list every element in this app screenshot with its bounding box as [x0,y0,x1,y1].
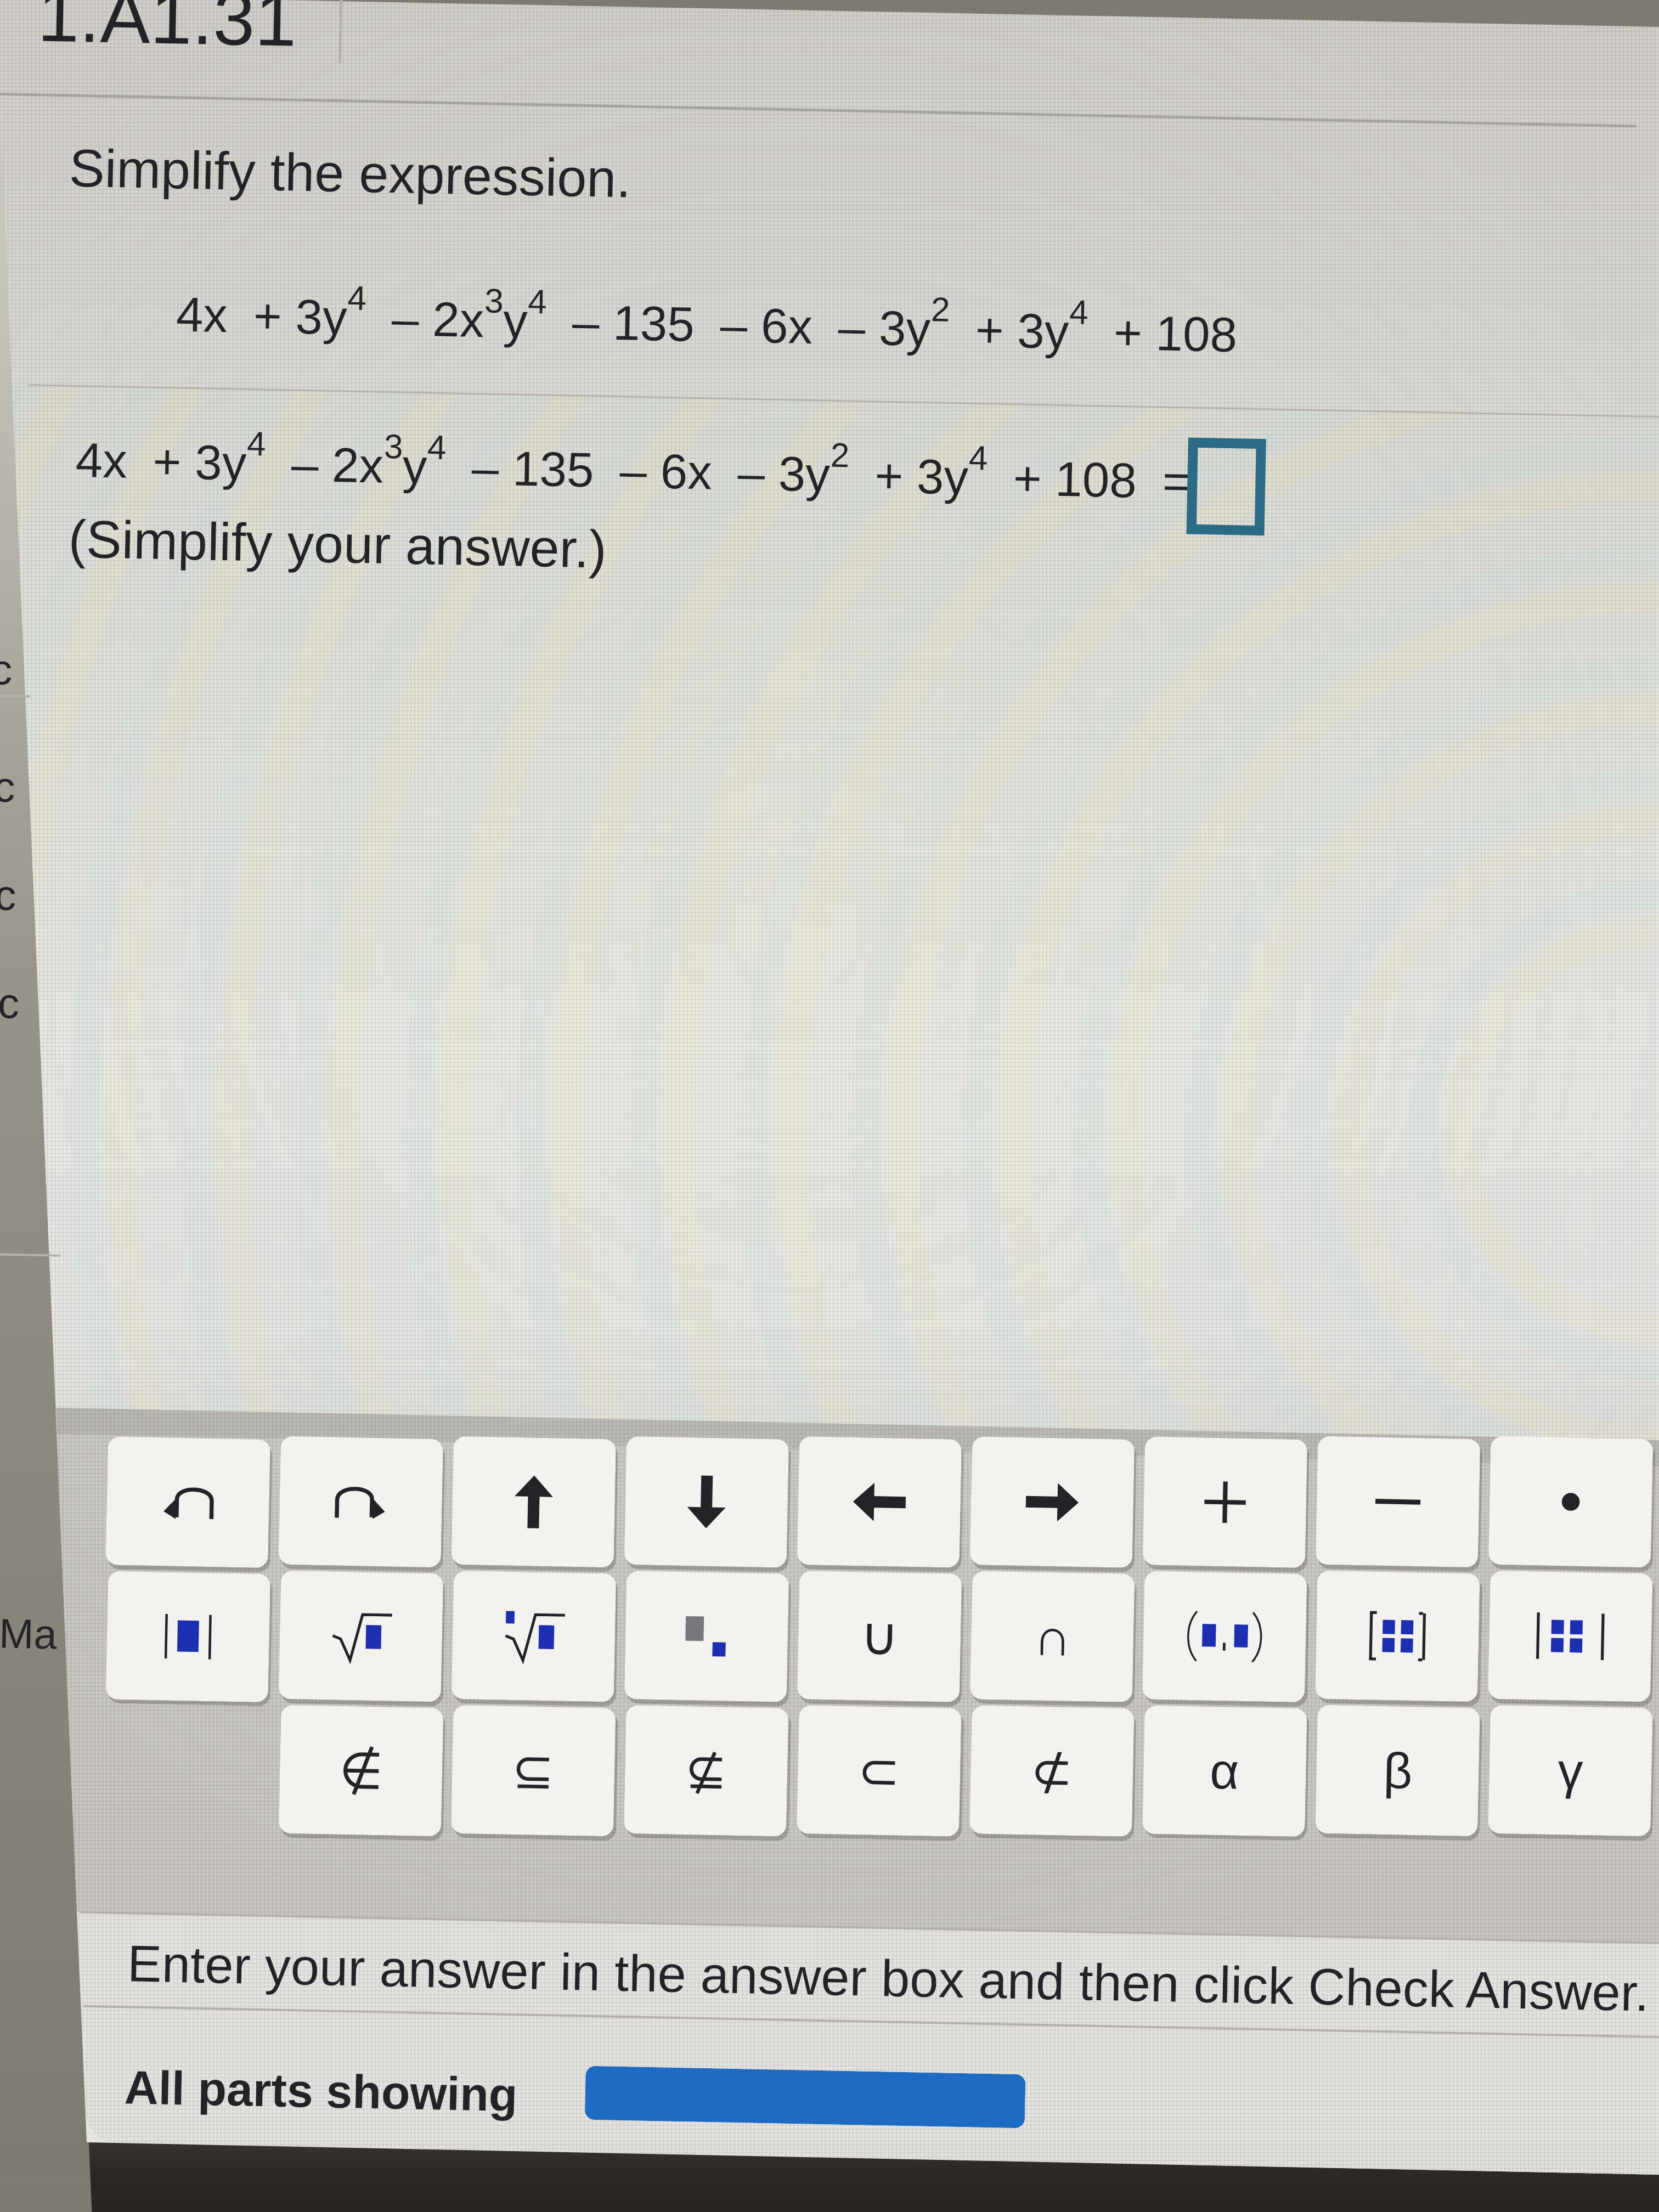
staticText: ⊈ [684,1741,728,1801]
button[interactable]: Move left [797,1436,962,1568]
staticText: ∪ [860,1605,900,1668]
staticText: ic [0,762,16,811]
staticText: Enter your answer in the answer box and … [127,1935,1650,2022]
button[interactable]: Move up [451,1436,616,1568]
button[interactable]: Not a subset or equal to [624,1705,789,1837]
button[interactable]: Subscript [624,1571,789,1702]
button[interactable]: Nth root [451,1571,616,1702]
button[interactable]: Undo [106,1436,270,1568]
button[interactable]: Check Answer [585,2066,1026,2128]
staticText: β [1383,1742,1413,1799]
button[interactable]: Absolute value [106,1571,271,1702]
button[interactable]: Subset or equal to [451,1705,616,1836]
staticText: 4x + 3y4 – 2x3y4 – 135 – 6x – 3y2 + 3y4 … [176,276,1238,362]
staticText: Simplify the expression. [69,138,632,208]
staticText: c [0,645,13,693]
button[interactable]: Move down [624,1436,789,1568]
button[interactable]: Multiplication dot [1488,1436,1653,1568]
button[interactable]: Intersection [970,1571,1135,1702]
button[interactable]: Not an element of [279,1705,443,1836]
button[interactable]: Determinant [1488,1571,1653,1702]
button[interactable]: Union [797,1571,962,1702]
button[interactable]: Ordered pair [1142,1571,1307,1702]
button[interactable]: Alpha [1142,1705,1307,1837]
button[interactable]: Beta [1315,1705,1480,1836]
staticText: ic [0,871,17,919]
staticText: γ [1557,1742,1584,1799]
staticText: All parts showing [124,2061,518,2121]
staticText: tic [0,979,20,1027]
staticText: ∩ [1033,1607,1072,1667]
button[interactable]: Square root [279,1570,443,1702]
button[interactable]: Move right [970,1436,1135,1568]
staticText: ∉ [339,1741,384,1801]
staticText: α [1209,1743,1240,1800]
button[interactable]: Proper subset of [797,1705,961,1837]
button[interactable]: Gamma [1488,1705,1653,1836]
button[interactable]: Plus [1143,1436,1308,1568]
staticText: (Ma [0,1610,57,1658]
staticText: ⊂ [857,1741,901,1801]
button[interactable]: Redo [278,1436,443,1568]
button[interactable]: Minus [1315,1436,1480,1567]
button[interactable]: Matrix [1315,1570,1480,1702]
staticText: 4x + 3y4 – 2x3y4 – 135 – 6x – 3y2 + 3y4 … [75,421,1204,509]
staticText: 1.A1.31 [37,0,298,62]
staticText: ⊄ [1030,1742,1074,1801]
staticText: (Simplify your answer.) [68,509,608,579]
button[interactable]: Not a subset of [969,1705,1134,1837]
staticText: ⊆ [511,1741,555,1801]
button[interactable]: Answer box [1186,438,1266,536]
